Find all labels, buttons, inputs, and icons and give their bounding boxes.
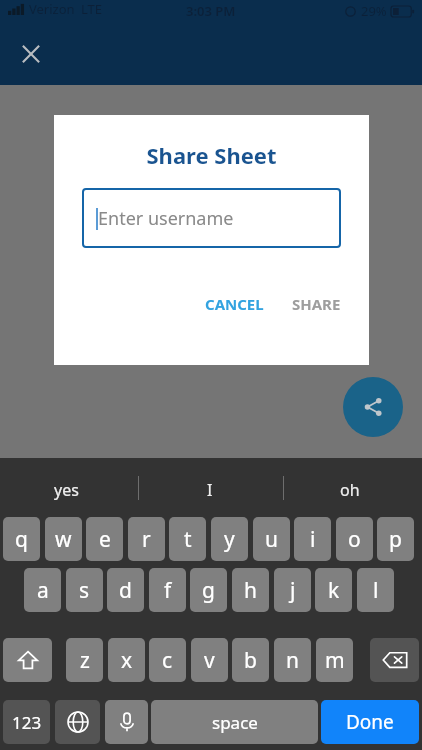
staticText: p [389, 525, 402, 554]
button[interactable]: l [357, 568, 394, 612]
button[interactable]: u [253, 517, 290, 561]
staticText: u [265, 525, 278, 554]
button[interactable]: a [24, 568, 61, 612]
button[interactable]: p [377, 517, 414, 561]
button[interactable]: space [151, 700, 318, 744]
staticText: Enter username [98, 206, 234, 231]
staticText: 3:03 PM [186, 2, 236, 20]
button[interactable]: Close [10, 33, 52, 75]
staticText: g [202, 576, 215, 605]
staticText: x [121, 646, 133, 675]
staticText: d [119, 576, 132, 605]
button[interactable]: i [294, 517, 331, 561]
button[interactable]: Enter username [82, 188, 341, 248]
staticText: e [99, 525, 111, 554]
staticText: m [325, 646, 345, 675]
staticText: i [310, 525, 316, 554]
button[interactable]: CANCEL [197, 288, 272, 320]
staticText: z [80, 646, 90, 675]
staticText: a [37, 576, 49, 605]
button[interactable]: m [316, 638, 353, 682]
staticText: v [204, 646, 215, 675]
button[interactable]: w [45, 517, 82, 561]
button[interactable]: f [149, 568, 186, 612]
staticText: k [328, 576, 340, 605]
button[interactable]: 123 [3, 700, 50, 744]
staticText: Done [346, 709, 394, 735]
staticText: r [142, 525, 151, 554]
staticText: 29% [361, 2, 387, 20]
button[interactable]: Share [343, 377, 403, 437]
button[interactable]: Voice input [105, 700, 148, 744]
staticText: LTE [81, 0, 103, 18]
staticText: q [15, 525, 28, 554]
button[interactable]: x [108, 638, 145, 682]
button[interactable]: o [336, 517, 373, 561]
staticText: SHARE [292, 294, 341, 314]
staticText: yes [54, 479, 79, 501]
button[interactable]: c [149, 638, 186, 682]
staticText: w [55, 525, 72, 554]
button[interactable]: j [274, 568, 311, 612]
staticText: j [290, 576, 296, 605]
button[interactable]: d [107, 568, 144, 612]
button[interactable] [3, 638, 52, 682]
button[interactable]: g [190, 568, 227, 612]
button[interactable]: z [66, 638, 103, 682]
button[interactable]: b [232, 638, 269, 682]
button[interactable]: v [191, 638, 228, 682]
staticText: s [79, 576, 90, 605]
staticText: oh [340, 479, 360, 501]
button[interactable]: k [315, 568, 352, 612]
staticText: c [162, 646, 173, 675]
staticText: Verizon [29, 0, 75, 18]
staticText: space [212, 711, 258, 734]
staticText: h [244, 576, 257, 605]
button[interactable]: t [169, 517, 206, 561]
button[interactable]: q [3, 517, 40, 561]
button[interactable]: Change language [55, 700, 100, 744]
staticText: n [286, 646, 299, 675]
staticText: f [164, 576, 172, 605]
staticText: 123 [12, 711, 42, 734]
staticText: Share Sheet [54, 140, 369, 170]
staticText: y [224, 525, 235, 554]
staticText: t [184, 525, 192, 554]
staticText: CANCEL [205, 294, 264, 314]
staticText: o [348, 525, 361, 554]
button[interactable]: s [66, 568, 103, 612]
button[interactable]: r [128, 517, 165, 561]
button[interactable]: e [86, 517, 123, 561]
button[interactable]: SHARE [284, 288, 349, 320]
button[interactable]: h [232, 568, 269, 612]
button[interactable]: Backspace [370, 638, 419, 682]
button[interactable]: Done [321, 700, 419, 744]
staticText: b [244, 646, 257, 675]
staticText: l [373, 576, 379, 605]
staticText: I [207, 479, 213, 501]
button[interactable]: y [211, 517, 248, 561]
button[interactable]: n [274, 638, 311, 682]
